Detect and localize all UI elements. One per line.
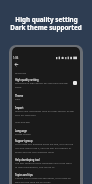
staticText: Help developing tool: [15, 158, 40, 161]
staticText: Theme: [15, 94, 24, 97]
button[interactable]: Import: [12, 106, 80, 117]
staticText: Follow system: [15, 132, 31, 135]
button[interactable]: Theme: [12, 94, 80, 100]
button[interactable]: Topics and tips: [12, 173, 80, 184]
staticText: APPLICATION: [15, 120, 31, 123]
staticText: Support group: [15, 139, 33, 142]
staticText: Dark: [15, 97, 21, 100]
button[interactable]: High quality setting: [12, 78, 80, 89]
staticText: Language: [15, 129, 27, 132]
staticText: High quality setting: [15, 78, 39, 81]
button[interactable]: Back: [12, 60, 21, 69]
staticText: If you have any problem using the app, o…: [15, 142, 74, 154]
staticText: The app supports more languages and if y…: [15, 161, 72, 169]
staticText: Import: [15, 106, 24, 109]
staticText: Import your recordings from an older ver…: [15, 109, 74, 117]
staticText: High quality setting: [15, 15, 78, 24]
staticText: Recording in high quality will use more …: [15, 81, 68, 89]
staticText: SETTINGS: [15, 71, 27, 74]
staticText: 1:06: [13, 56, 19, 60]
button[interactable]: Support group: [12, 139, 80, 154]
staticText: Topics and tips: [15, 173, 33, 176]
staticText: I would like to make the app better, if …: [15, 176, 71, 184]
button[interactable]: Help developing tool: [12, 158, 80, 169]
button[interactable]: Language: [12, 129, 80, 135]
staticText: Dark theme supported: [10, 23, 82, 32]
